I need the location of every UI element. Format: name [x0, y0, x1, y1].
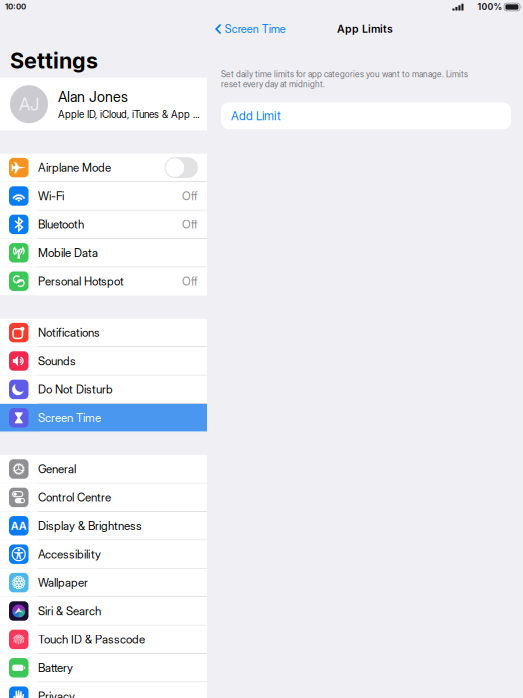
staticText: Off — [182, 217, 198, 231]
staticText: Do Not Disturb — [38, 382, 113, 396]
staticText: 10:00 — [5, 2, 26, 11]
button[interactable]: Wallpaper — [0, 569, 207, 597]
button[interactable]: Screen Time — [207, 14, 294, 44]
button[interactable]: Screen Time — [0, 404, 207, 432]
button[interactable]: AA — [0, 512, 207, 540]
button[interactable]: Siri & Search — [0, 597, 207, 625]
button[interactable]: Mobile Data — [0, 239, 207, 267]
staticText: Siri & Search — [38, 604, 101, 618]
staticText: Screen Time — [225, 22, 286, 36]
staticText: Off — [182, 189, 198, 203]
button[interactable]: Do Not Disturb — [0, 375, 207, 404]
staticText: Add Limit — [231, 109, 281, 123]
button[interactable]: Touch ID & Passcode — [0, 625, 207, 654]
staticText: Wi-Fi — [38, 189, 64, 203]
staticText: Mobile Data — [38, 246, 98, 260]
staticText: Settings — [10, 48, 98, 74]
button[interactable]: AJ — [0, 78, 207, 131]
button[interactable]: Wi-Fi — [0, 182, 207, 210]
staticText: Privacy — [38, 689, 75, 698]
button[interactable]: Accessibility — [0, 540, 207, 569]
staticText: AJ — [19, 94, 39, 115]
staticText: App Limits — [337, 23, 393, 35]
staticText: Airplane Mode — [38, 161, 111, 175]
staticText: Screen Time — [38, 411, 101, 425]
staticText: Personal Hotspot — [38, 274, 124, 288]
staticText: Off — [182, 274, 198, 288]
staticText: Set daily time limits for app categories… — [221, 69, 468, 89]
button[interactable]: Airplane Mode — [0, 154, 207, 182]
button[interactable]: Sounds — [0, 347, 207, 375]
button[interactable]: Bluetooth — [0, 210, 207, 239]
button[interactable]: General — [0, 455, 207, 483]
staticText: Battery — [38, 661, 73, 675]
button[interactable]: Personal Hotspot — [0, 267, 207, 296]
staticText: Sounds — [38, 354, 76, 368]
staticText: Accessibility — [38, 547, 101, 561]
staticText: Apple ID, iCloud, iTunes & App St… — [58, 108, 201, 120]
staticText: General — [38, 462, 76, 476]
staticText: AA — [11, 519, 27, 532]
staticText: 100% — [477, 2, 502, 12]
button[interactable]: Notifications — [0, 319, 207, 347]
button[interactable]: Battery — [0, 654, 207, 682]
staticText: Touch ID & Passcode — [38, 632, 145, 646]
staticText: Notifications — [38, 326, 100, 340]
staticText: Wallpaper — [38, 576, 88, 590]
button[interactable]: Add Limit — [221, 102, 511, 129]
staticText: Bluetooth — [38, 217, 84, 231]
button[interactable]: Control Centre — [0, 483, 207, 512]
staticText: Display & Brightness — [38, 519, 142, 533]
staticText: Alan Jones — [58, 88, 128, 105]
button[interactable]: Privacy — [0, 682, 207, 698]
staticText: Control Centre — [38, 490, 111, 504]
